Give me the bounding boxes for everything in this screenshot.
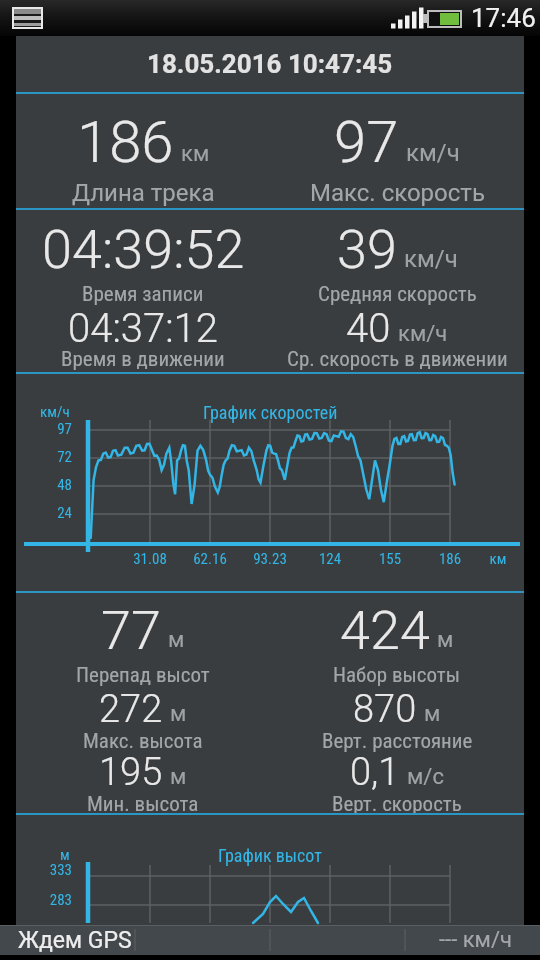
staticText: Макс. скорость <box>310 179 485 207</box>
staticText: Верт. скорость <box>332 792 462 817</box>
staticText: 186 <box>77 108 174 176</box>
staticText: км <box>181 141 210 167</box>
staticText: Макс. высота <box>83 729 203 754</box>
staticText: км <box>478 550 518 568</box>
staticText: 186 <box>410 550 490 568</box>
staticText: 77 <box>101 599 161 662</box>
staticText: --- км/ч <box>439 927 512 953</box>
staticText: 04:39:52 <box>42 218 245 281</box>
staticText: График скоростей <box>203 402 338 423</box>
staticText: 04:37:12 <box>68 305 218 352</box>
staticText: 31.08 <box>110 550 190 568</box>
staticText: Время записи <box>82 282 204 307</box>
staticText: м <box>60 846 70 864</box>
staticText: 39 <box>337 218 397 281</box>
staticText: м <box>424 701 441 727</box>
staticText: Время в движении <box>61 347 225 372</box>
staticText: 48 <box>16 476 72 494</box>
staticText: 283 <box>16 891 72 909</box>
staticText: Набор высоты <box>333 663 461 688</box>
staticText: График высот <box>218 845 322 866</box>
staticText: Верт. расстояние <box>322 729 473 754</box>
staticText: 333 <box>16 861 72 879</box>
staticText: 195 <box>99 750 163 795</box>
staticText: 17:46 <box>471 3 536 33</box>
staticText: 72 <box>16 448 72 466</box>
staticText: 0,1 <box>350 750 400 795</box>
staticText: 97 <box>16 420 72 438</box>
staticText: Ср. скорость в движении <box>287 347 508 372</box>
staticText: м <box>437 627 454 653</box>
button[interactable]: Ждем GPS <box>0 925 540 955</box>
staticText: 40 <box>346 305 391 352</box>
staticText: 124 <box>290 550 370 568</box>
staticText: км/ч <box>406 139 460 167</box>
button[interactable]: 18.05.2016 10:47:45 <box>16 36 524 92</box>
staticText: 272 <box>99 687 163 732</box>
staticText: км/ч <box>40 403 70 421</box>
staticText: 424 <box>340 599 430 662</box>
staticText: м <box>170 701 187 727</box>
staticText: 97 <box>334 108 399 176</box>
staticText: м <box>168 627 185 653</box>
staticText: Перепад высот <box>76 663 210 688</box>
staticText: м/с <box>407 764 444 790</box>
staticText: Мин. высота <box>87 792 199 817</box>
staticText: 62.16 <box>170 550 250 568</box>
staticText: м <box>170 764 187 790</box>
staticText: 18.05.2016 10:47:45 <box>147 49 393 79</box>
staticText: 24 <box>16 504 72 522</box>
staticText: 93.23 <box>230 550 310 568</box>
staticText: Средняя скорость <box>318 282 477 307</box>
staticText: км/ч <box>398 321 448 347</box>
staticText: 870 <box>353 687 417 732</box>
staticText: Длина трека <box>72 179 215 207</box>
staticText: 155 <box>350 550 430 568</box>
staticText: Ждем GPS <box>18 927 132 954</box>
staticText: км/ч <box>404 245 458 273</box>
